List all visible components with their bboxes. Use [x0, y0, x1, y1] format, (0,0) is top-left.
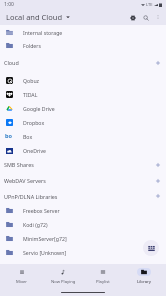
staticText: Mixer	[16, 279, 28, 285]
staticText: Qobuz	[23, 77, 40, 84]
button[interactable]: Google Drive	[0, 101, 166, 115]
button[interactable]: Search	[139, 11, 152, 24]
button[interactable]: Playlist	[85, 264, 121, 285]
button[interactable]: Now Playing	[45, 264, 81, 285]
button[interactable]: Folders	[0, 39, 166, 52]
button[interactable]: Kodi (g72)	[0, 217, 166, 231]
button[interactable]: Qobuz	[0, 73, 166, 87]
button[interactable]: WebDAV Servers	[0, 172, 166, 189]
button[interactable]: TIDAL	[0, 87, 166, 101]
staticText: OneDrive	[23, 147, 47, 154]
staticText: Library	[137, 279, 152, 285]
staticText: Google Drive	[23, 105, 55, 112]
staticText: Kodi (g72)	[23, 221, 48, 228]
button[interactable]: Internal storage	[0, 26, 166, 39]
button[interactable]: Dropbox	[0, 115, 166, 129]
button[interactable]: More options	[152, 11, 164, 23]
staticText: TIDAL	[23, 91, 38, 98]
staticText: Cloud	[4, 59, 19, 66]
staticText: Internal storage	[23, 29, 63, 36]
button[interactable]: MinimServer[g72]	[0, 231, 166, 245]
button[interactable]: box	[0, 129, 166, 143]
staticText: MinimServer[g72]	[23, 235, 67, 242]
staticText: Playlist	[96, 279, 110, 285]
staticText: Folders	[23, 42, 41, 49]
staticText: Now Playing	[51, 279, 76, 285]
staticText: SMB Shares	[4, 161, 34, 168]
button[interactable]: Cloud	[0, 52, 166, 73]
button[interactable]: Local and Cloud	[6, 10, 70, 24]
staticText: LTE	[146, 2, 153, 7]
button[interactable]: OneDrive	[0, 143, 166, 157]
staticText: 1:00	[4, 1, 14, 8]
staticText: Local and Cloud	[6, 12, 63, 22]
button[interactable]: UPnP/DLNA Libraries	[0, 189, 166, 203]
staticText: Dropbox	[23, 119, 45, 126]
button[interactable]: Freebox Server	[0, 203, 166, 217]
button[interactable]: Servio [Unknown]	[0, 245, 166, 259]
button[interactable]: Settings	[126, 11, 139, 24]
button[interactable]: Library	[126, 264, 162, 285]
staticText: UPnP/DLNA Libraries	[4, 193, 58, 200]
staticText: Freebox Server	[23, 207, 60, 214]
button[interactable]: SMB Shares	[0, 157, 166, 172]
staticText: box	[5, 132, 14, 141]
staticText: Box	[23, 133, 33, 140]
button[interactable]: Mixer	[4, 264, 40, 285]
staticText: WebDAV Servers	[4, 177, 46, 184]
button[interactable]: Play queue	[143, 240, 159, 256]
staticText: Servio [Unknown]	[23, 249, 67, 256]
